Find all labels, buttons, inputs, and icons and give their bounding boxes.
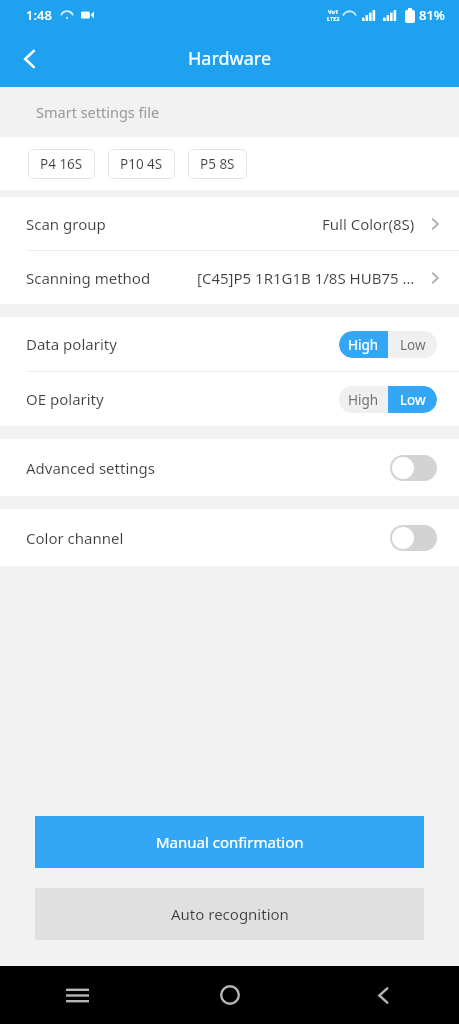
staticText: P10 4S [120, 155, 163, 173]
button[interactable]: P5 8S [188, 149, 247, 179]
button[interactable]: Scan group [0, 197, 459, 250]
staticText: 1:48 [26, 6, 52, 24]
staticText: Manual confirmation [156, 832, 304, 852]
staticText: Auto recognition [171, 904, 289, 924]
staticText: LTE2 [327, 15, 340, 22]
staticText: Scan group [26, 214, 106, 234]
staticText: Color channel [26, 528, 124, 548]
staticText: OE polarity [26, 389, 104, 409]
button[interactable]: Recent apps [48, 966, 106, 1024]
button[interactable]: P10 4S [108, 149, 175, 179]
button[interactable]: Color channel switch [390, 525, 437, 551]
button[interactable]: Back [354, 966, 412, 1024]
button[interactable]: Back [6, 35, 54, 83]
button[interactable]: Manual confirmation [35, 816, 424, 868]
button[interactable]: Low [388, 386, 437, 413]
staticText: High [348, 391, 379, 409]
staticText: Low [400, 391, 426, 409]
button[interactable]: Advanced settings switch [390, 455, 437, 481]
staticText: Hardware [188, 46, 272, 71]
button[interactable]: High [339, 331, 388, 358]
button[interactable]: Home [201, 966, 259, 1024]
button[interactable]: Low [388, 331, 437, 358]
staticText: Low [400, 336, 426, 354]
staticText: Advanced settings [26, 458, 155, 478]
staticText: [C45]P5 1R1G1B 1/8S HUB75 … [197, 268, 415, 288]
button[interactable]: High [339, 386, 388, 413]
button[interactable]: P4 16S [28, 149, 95, 179]
staticText: Scanning method [26, 268, 151, 288]
staticText: Vo1 [328, 8, 339, 15]
staticText: 81% [419, 6, 445, 24]
staticText: Smart settings file [36, 102, 160, 122]
staticText: P4 16S [40, 155, 83, 173]
staticText: P5 8S [200, 155, 235, 173]
staticText: Data polarity [26, 334, 117, 354]
button[interactable]: Auto recognition [35, 888, 424, 940]
staticText: High [348, 336, 379, 354]
staticText: Full Color(8S) [322, 214, 415, 234]
button[interactable]: Scanning method [0, 251, 459, 304]
